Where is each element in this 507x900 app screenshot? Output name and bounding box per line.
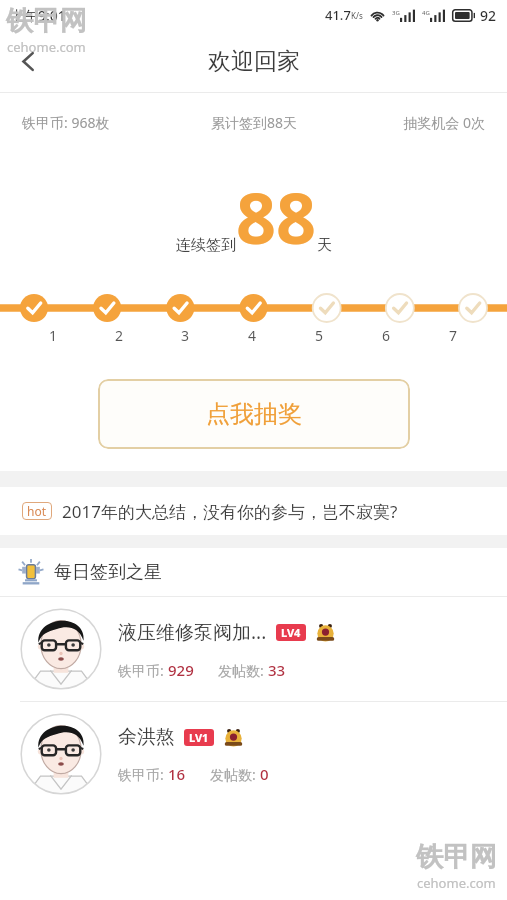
staticText: cehome.com	[417, 874, 496, 892]
staticText: cehome.com	[7, 38, 86, 56]
staticText: 2017年的大总结，没有你的参与，岂不寂寞?	[62, 500, 398, 523]
staticText: 0	[260, 764, 269, 784]
staticText: 点我抽奖	[206, 399, 302, 429]
staticText: 1	[49, 326, 58, 345]
staticText: 余洪熬	[118, 725, 175, 749]
staticText: 3G	[392, 9, 400, 17]
staticText: 92	[480, 6, 497, 25]
staticText: 连续签到	[176, 236, 236, 255]
staticText: 16	[168, 764, 186, 784]
button[interactable]: 液压维修泵阀加...	[0, 597, 507, 701]
staticText: 4G	[422, 9, 430, 17]
staticText: LV1	[189, 730, 209, 745]
staticText: 抽奖机会 0次	[331, 113, 485, 132]
staticText: 天	[317, 236, 332, 255]
staticText: 累计签到88天	[177, 113, 331, 132]
staticText: hot	[27, 503, 47, 519]
staticText: 铁甲币:	[118, 765, 168, 784]
staticText: 41.7	[325, 6, 351, 24]
button[interactable]: 点我抽奖	[98, 379, 410, 449]
staticText: 2	[115, 326, 124, 345]
staticText: 33	[268, 660, 286, 680]
staticText: 发帖数:	[218, 661, 268, 680]
staticText: 铁甲币:	[118, 661, 168, 680]
staticText: 发帖数:	[210, 765, 260, 784]
staticText: 929	[168, 660, 194, 680]
button[interactable]: 余洪熬	[0, 702, 507, 806]
staticText: 铁甲网	[6, 4, 87, 38]
staticText: 铁甲币: 968枚	[22, 113, 177, 132]
button[interactable]: hot	[0, 487, 507, 535]
staticText: 上午9:01	[10, 6, 66, 25]
staticText: 液压维修泵阀加...	[118, 619, 267, 645]
staticText: 7	[449, 326, 458, 345]
staticText: 每日签到之星	[54, 561, 162, 584]
button[interactable]: Back	[0, 33, 56, 89]
staticText: 欢迎回家	[208, 47, 300, 76]
staticText: 3	[181, 326, 190, 345]
staticText: 铁甲网	[416, 840, 497, 874]
staticText: K/s	[351, 10, 363, 21]
staticText: 88	[236, 169, 317, 264]
staticText: 4	[248, 326, 257, 345]
staticText: 6	[382, 326, 391, 345]
staticText: 5	[315, 326, 324, 345]
staticText: LV4	[281, 625, 301, 640]
